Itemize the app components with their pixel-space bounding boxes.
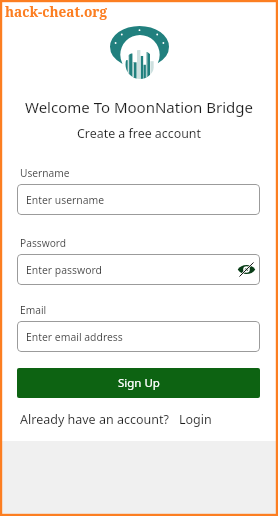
staticText: Email [20,303,47,317]
button[interactable]: Sign Up [17,368,260,398]
staticText: Already have an account? [20,411,169,428]
button[interactable]: Enter username [17,184,260,215]
staticText: Password [20,236,67,250]
button[interactable]: Enter email address [17,321,260,352]
staticText: Enter password [26,263,237,277]
button[interactable]: Toggle password visibility [237,262,256,277]
staticText: Enter email address [26,330,256,344]
staticText: hack-cheat.org [5,2,107,21]
staticText: Sign Up [118,375,160,391]
staticText: Create a free account [0,125,278,142]
staticText: Enter username [26,193,256,207]
button[interactable]: Enter password [17,254,260,285]
staticText: Login [179,411,212,428]
staticText: Username [20,166,70,180]
staticText: Welcome To MoonNation Bridge [0,97,278,117]
button[interactable]: Login [179,411,212,428]
